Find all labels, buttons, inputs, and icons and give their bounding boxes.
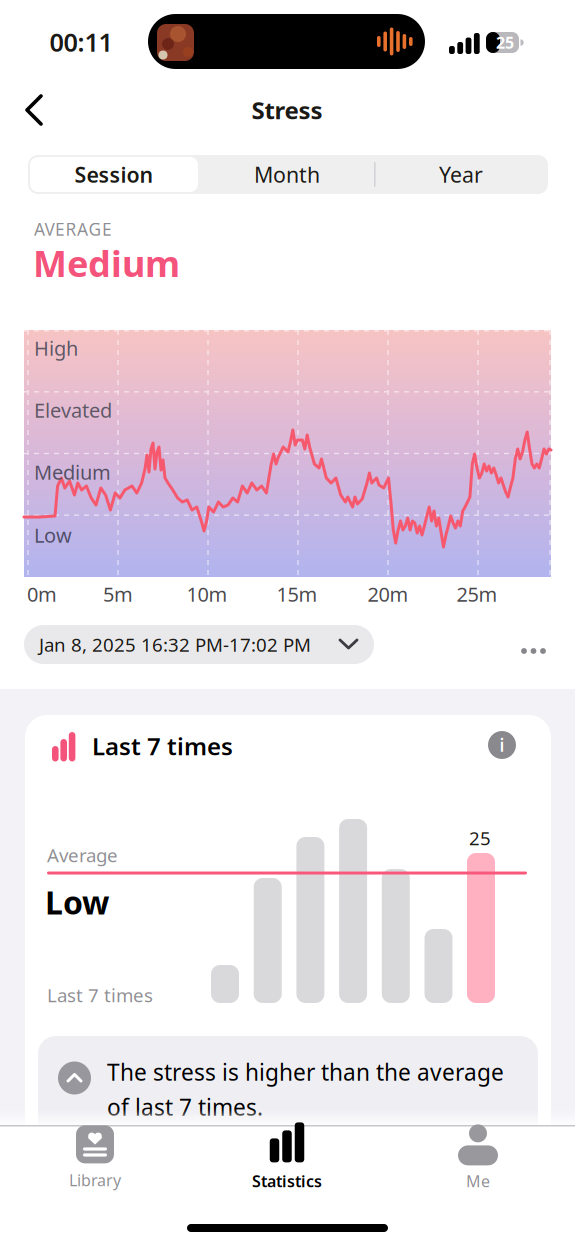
staticText: 0m xyxy=(27,581,57,607)
staticText: Last 7 times xyxy=(92,730,233,762)
staticText: 25m xyxy=(456,581,497,607)
staticText: Medium xyxy=(34,459,111,485)
staticText: Me xyxy=(466,1170,490,1192)
staticText: i xyxy=(499,733,504,756)
staticText: 20m xyxy=(367,581,408,607)
staticText: 5m xyxy=(103,581,133,607)
button[interactable]: Year xyxy=(376,155,546,194)
staticText: Jan 8, 2025 16:32 PM-17:02 PM xyxy=(39,632,311,657)
staticText: The stress is higher than the average xyxy=(107,1057,504,1087)
staticText: Month xyxy=(254,160,320,189)
button[interactable]: Collapse xyxy=(58,1061,91,1094)
staticText: of last 7 times. xyxy=(107,1092,263,1122)
staticText: Stress xyxy=(251,94,322,126)
staticText: Low xyxy=(34,522,72,548)
button[interactable]: Jan 8, 2025 16:32 PM-17:02 PM xyxy=(24,625,374,664)
staticText: Low xyxy=(45,881,109,923)
staticText: Medium xyxy=(33,239,180,287)
staticText: 10m xyxy=(186,581,227,607)
button[interactable]: More xyxy=(0,0,575,1245)
staticText: 00:11 xyxy=(49,25,112,59)
staticText: 25 xyxy=(469,826,491,850)
button[interactable]: Session xyxy=(30,157,198,192)
staticText: Statistics xyxy=(252,1170,322,1192)
button[interactable]: Month xyxy=(202,155,372,194)
staticText: 15m xyxy=(276,581,317,607)
staticText: Elevated xyxy=(34,397,112,423)
staticText: Average xyxy=(47,843,118,867)
staticText: Last 7 times xyxy=(47,983,153,1007)
button[interactable]: Info xyxy=(488,731,516,759)
staticText: High xyxy=(34,335,78,361)
staticText: AVERAGE xyxy=(34,217,112,240)
staticText: Year xyxy=(439,160,483,189)
button[interactable]: Statistics xyxy=(212,1121,362,1193)
button[interactable]: Back xyxy=(12,83,56,137)
staticText: Session xyxy=(74,160,153,189)
button[interactable]: Me xyxy=(403,1122,553,1194)
staticText: 25 xyxy=(496,32,514,53)
button[interactable]: Library xyxy=(20,1122,170,1194)
staticText: Library xyxy=(69,1169,121,1191)
